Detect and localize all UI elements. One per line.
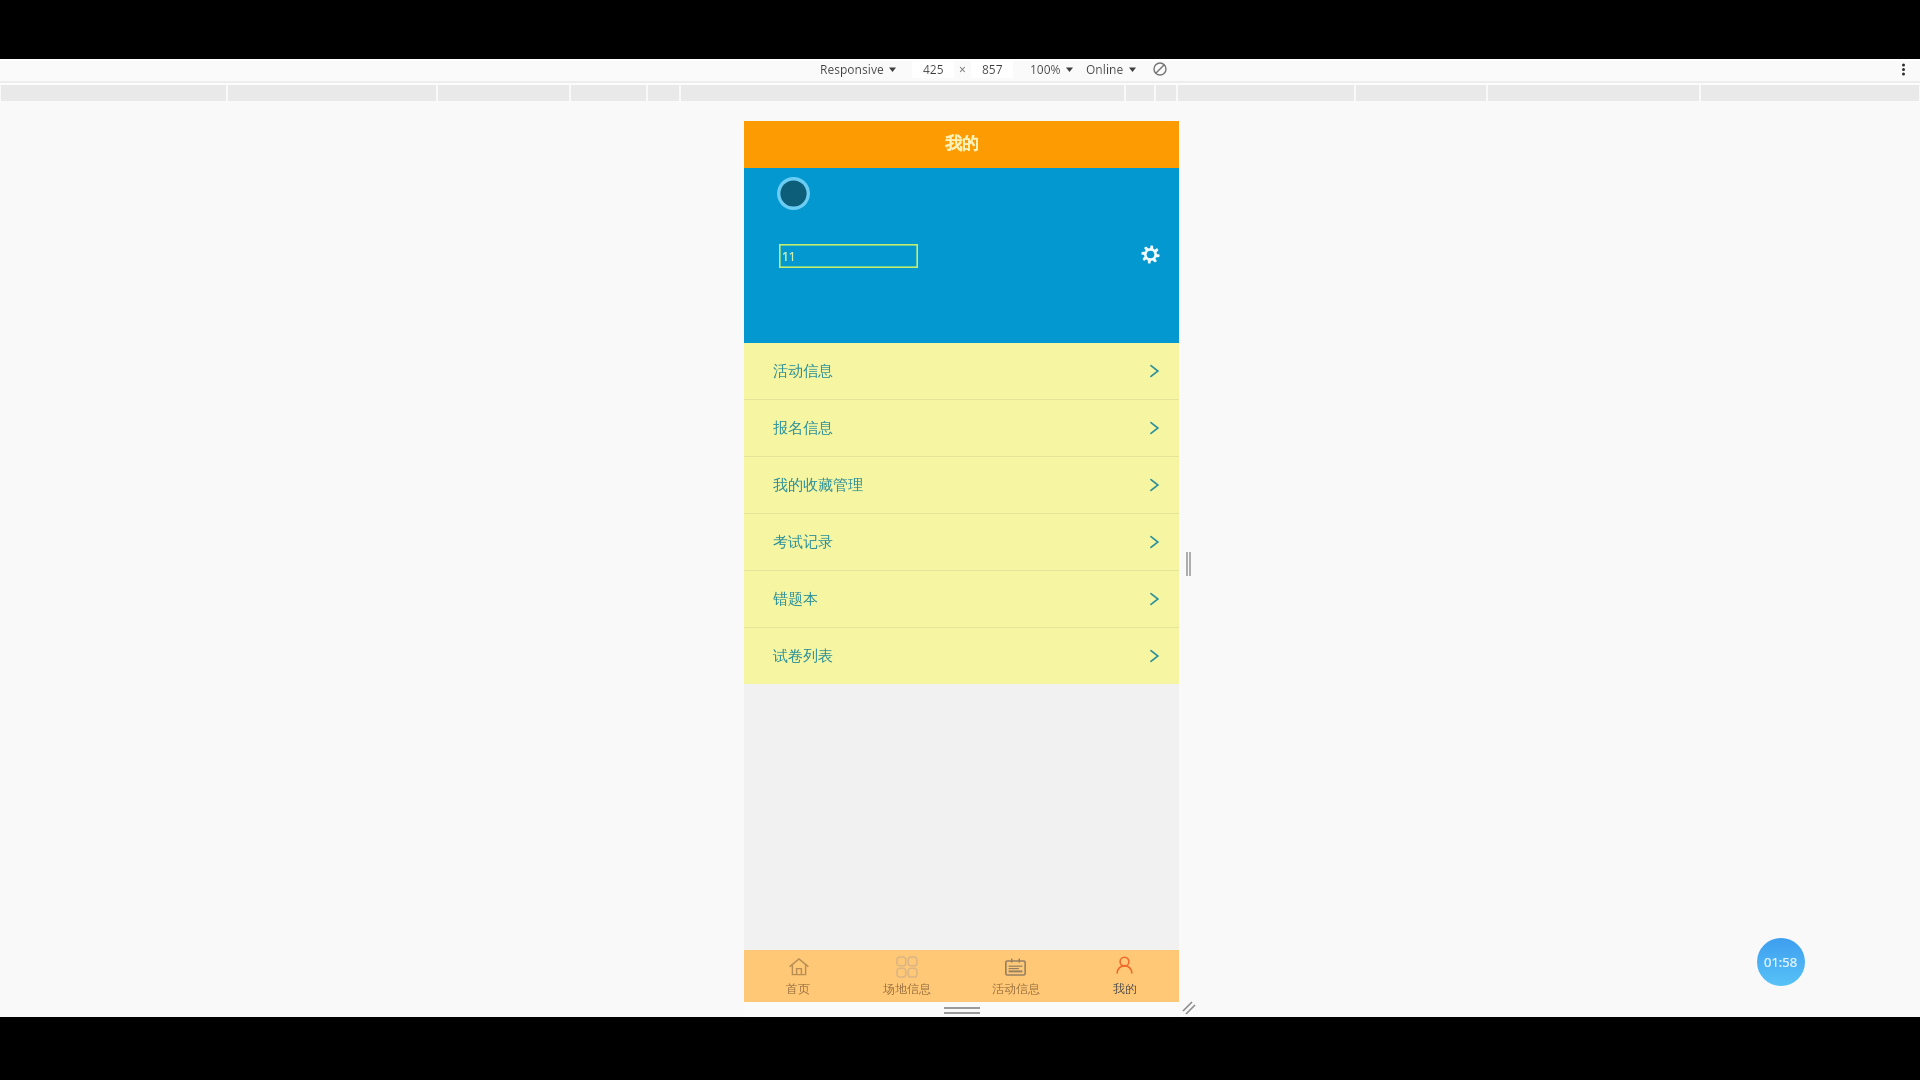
staticText: 我的收藏管理 [773, 476, 863, 495]
button[interactable]: Resize device width [1185, 552, 1193, 576]
staticText: 考试记录 [773, 533, 833, 552]
staticText: 100% [1030, 61, 1061, 77]
button[interactable]: 首页 [744, 950, 852, 1002]
button[interactable]: Resize device height [944, 1007, 980, 1016]
button[interactable]: Throttling off [1150, 59, 1170, 79]
button[interactable]: 活动信息 [744, 343, 1179, 399]
staticText: 11 [782, 248, 796, 264]
staticText: Responsive [820, 61, 884, 77]
staticText: 错题本 [773, 590, 818, 609]
button[interactable]: Responsive [820, 61, 896, 77]
button[interactable]: 我的 [744, 121, 1179, 168]
staticText: 场地信息 [883, 981, 931, 996]
button[interactable]: 场地信息 [852, 950, 961, 1002]
button[interactable]: Nickname field [779, 244, 918, 268]
button[interactable]: 100% [1030, 61, 1073, 77]
button[interactable]: 试卷列表 [744, 628, 1179, 684]
staticText: 活动信息 [773, 362, 833, 381]
staticText: 试卷列表 [773, 647, 833, 666]
staticText: 首页 [786, 981, 810, 996]
staticText: 活动信息 [992, 981, 1040, 996]
button[interactable]: 425 [912, 60, 954, 78]
button[interactable]: 考试记录 [744, 514, 1179, 570]
button[interactable]: 报名信息 [744, 400, 1179, 456]
button[interactable]: More options [1892, 59, 1914, 79]
staticText: 我的 [945, 133, 979, 154]
button[interactable]: 我的收藏管理 [744, 457, 1179, 513]
staticText: Online [1086, 61, 1124, 77]
button[interactable]: 我的 [1070, 950, 1179, 1002]
button[interactable]: 错题本 [744, 571, 1179, 627]
button[interactable]: Online [1086, 61, 1136, 77]
staticText: 我的 [1113, 981, 1137, 996]
button[interactable]: User avatar [777, 177, 810, 210]
button[interactable]: 活动信息 [961, 950, 1070, 1002]
button[interactable]: 857 [971, 60, 1013, 78]
button[interactable]: 01:58 [1757, 938, 1805, 986]
button[interactable]: Resize device [1182, 1001, 1196, 1015]
staticText: 857 [982, 61, 1003, 77]
staticText: 425 [923, 61, 944, 77]
button[interactable]: Settings [1140, 244, 1160, 264]
staticText: 01:58 [1764, 953, 1798, 971]
staticText: 报名信息 [773, 419, 833, 438]
staticText: × [959, 61, 966, 77]
